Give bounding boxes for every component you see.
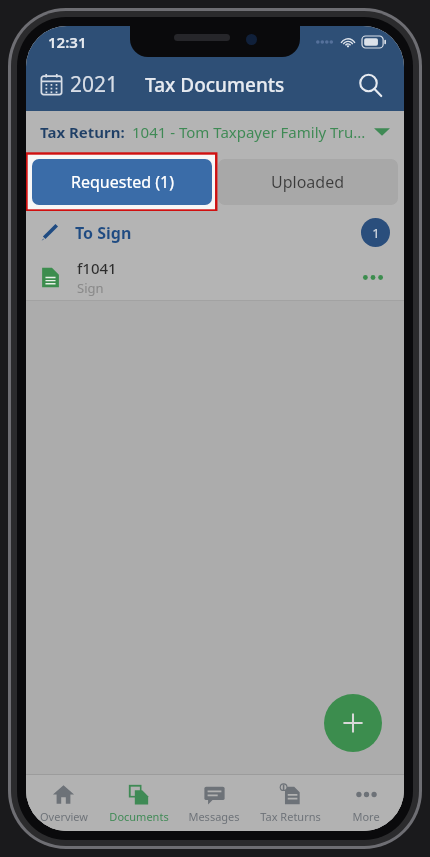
other: Tax year 2021 <box>40 73 63 96</box>
staticText: Tax Returns <box>260 809 321 824</box>
staticText: Requested (1) <box>71 171 174 193</box>
staticText: 1 <box>372 224 380 242</box>
staticText: Messages <box>188 809 240 824</box>
staticText: 12:31 <box>48 32 87 52</box>
staticText: Documents <box>109 809 169 824</box>
button[interactable]: f1041 <box>40 254 390 300</box>
button[interactable]: Overview <box>26 775 101 831</box>
staticText: Tax Return: <box>40 122 125 142</box>
staticText: More <box>352 809 380 824</box>
button[interactable]: Uploaded <box>218 159 398 205</box>
button[interactable]: Tax Return: <box>40 111 390 153</box>
staticText: Overview <box>40 809 88 824</box>
staticText: Uploaded <box>271 171 345 193</box>
button[interactable]: Requested (1) <box>32 159 212 205</box>
staticText: f1041 <box>77 258 117 278</box>
button[interactable]: More options <box>356 260 390 294</box>
staticText: Sign <box>77 279 104 297</box>
button[interactable]: Documents <box>101 775 176 831</box>
button[interactable]: Add document <box>324 694 382 752</box>
button[interactable]: More <box>328 775 404 831</box>
staticText: Tax Documents <box>145 72 285 98</box>
button[interactable]: Tax Returns <box>252 775 328 831</box>
button[interactable]: Search <box>352 67 388 103</box>
button[interactable]: Tax year 2021 <box>40 70 119 99</box>
staticText: 2021 <box>70 70 119 99</box>
staticText: To Sign <box>75 222 132 244</box>
button[interactable]: Messages <box>176 775 252 831</box>
button[interactable]: To Sign <box>40 211 390 254</box>
staticText: 1041 - Tom Taxpayer Family Tru... <box>132 122 374 142</box>
